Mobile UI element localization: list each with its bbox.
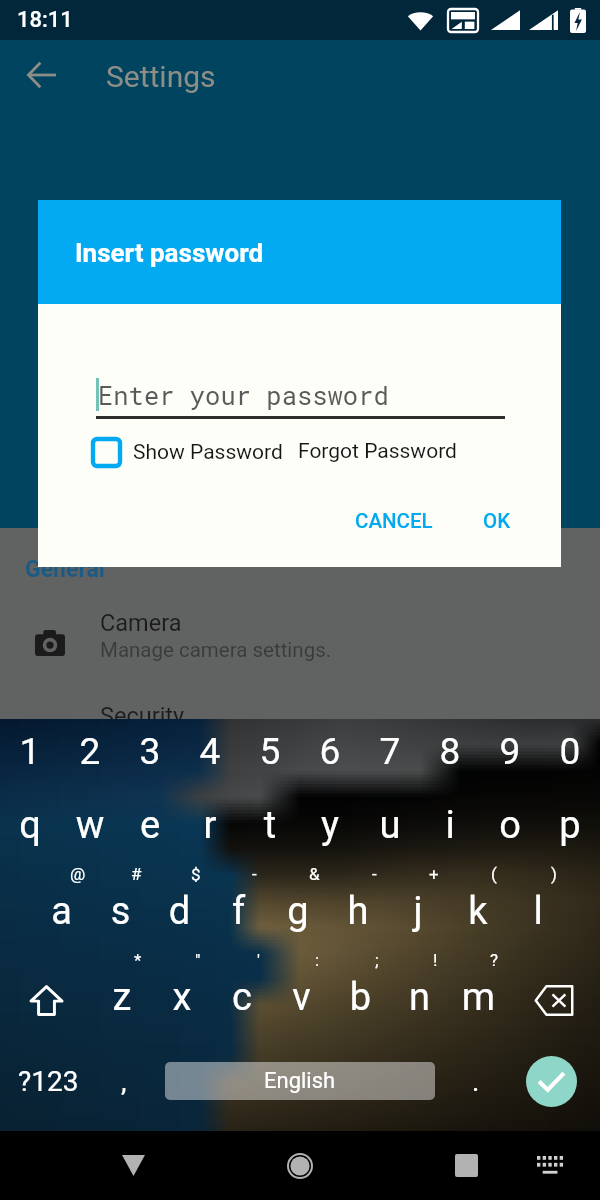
button[interactable]: 8 xyxy=(420,730,480,776)
button[interactable]: 7 xyxy=(360,730,420,776)
staticText: 0 xyxy=(540,730,600,773)
button[interactable]: Backspace xyxy=(508,965,600,1035)
button[interactable]: 2 xyxy=(60,730,120,776)
staticText: y xyxy=(300,803,360,848)
staticText: ) xyxy=(551,864,557,884)
button[interactable]: n xyxy=(390,975,449,1023)
button[interactable]: y xyxy=(300,803,360,851)
button[interactable]: h xyxy=(328,889,388,937)
button[interactable]: Back xyxy=(99,1131,167,1200)
button[interactable]: English xyxy=(165,1062,435,1100)
staticText: g xyxy=(268,889,328,934)
staticText: ' xyxy=(257,950,260,970)
staticText: : xyxy=(315,950,320,970)
button[interactable]: i xyxy=(420,803,480,851)
staticText: 2 xyxy=(60,730,120,773)
button[interactable]: Show Password xyxy=(88,432,283,473)
staticText: CANCEL xyxy=(355,509,433,533)
button[interactable]: d xyxy=(150,889,209,937)
button[interactable]: . xyxy=(448,1051,504,1111)
button[interactable]: ?123 xyxy=(0,1051,96,1111)
staticText: d xyxy=(150,889,209,934)
staticText: r xyxy=(180,803,240,848)
button[interactable]: f xyxy=(209,889,268,937)
staticText: Security xyxy=(100,702,185,730)
button[interactable]: v xyxy=(272,975,331,1023)
staticText: x xyxy=(152,975,212,1020)
button[interactable]: 6 xyxy=(300,730,360,776)
button[interactable]: Back xyxy=(13,47,69,103)
button[interactable]: , xyxy=(96,1051,152,1111)
button[interactable]: x xyxy=(152,975,212,1023)
staticText: - xyxy=(372,864,377,884)
staticText: ?123 xyxy=(18,1065,79,1098)
button[interactable]: u xyxy=(360,803,420,851)
staticText: Settings xyxy=(106,59,216,94)
staticText: v xyxy=(272,975,331,1020)
staticText: 8 xyxy=(420,730,480,773)
button[interactable]: Shift xyxy=(0,965,92,1035)
button[interactable]: k xyxy=(448,889,508,937)
staticText: 3 xyxy=(120,730,180,773)
staticText: + xyxy=(429,864,439,884)
staticText: i xyxy=(420,803,480,848)
staticText: 4 xyxy=(180,730,240,773)
button[interactable]: m xyxy=(449,975,508,1023)
button[interactable]: o xyxy=(480,803,540,851)
button[interactable]: Enter xyxy=(526,1056,577,1107)
button[interactable]: Forgot Password xyxy=(298,439,457,464)
staticText: f xyxy=(209,889,268,934)
button[interactable]: b xyxy=(331,975,390,1023)
staticText: l xyxy=(508,889,568,934)
button[interactable]: 9 xyxy=(480,730,540,776)
button[interactable]: c xyxy=(212,975,272,1023)
staticText: c xyxy=(212,975,272,1020)
staticText: @ xyxy=(70,864,86,884)
staticText: ; xyxy=(375,950,379,970)
staticText: Manage camera settings. xyxy=(100,638,332,662)
staticText: 9 xyxy=(480,730,540,773)
staticText: - xyxy=(252,864,257,884)
button[interactable]: Security xyxy=(0,689,600,782)
staticText: Enter your password xyxy=(98,378,389,412)
button[interactable]: l xyxy=(508,889,568,937)
staticText: q xyxy=(0,803,60,848)
button[interactable]: 5 xyxy=(240,730,300,776)
staticText: o xyxy=(480,803,540,848)
button[interactable]: g xyxy=(268,889,328,937)
staticText: ? xyxy=(490,950,499,970)
staticText: a xyxy=(32,889,91,934)
staticText: English xyxy=(264,1068,336,1094)
staticText: 5 xyxy=(240,730,300,773)
button[interactable]: a xyxy=(32,889,91,937)
button[interactable]: 3 xyxy=(120,730,180,776)
staticText: Insert password xyxy=(75,238,264,268)
staticText: $ xyxy=(191,864,201,884)
staticText: u xyxy=(360,803,420,848)
button[interactable]: Recents xyxy=(432,1131,500,1200)
button[interactable]: q xyxy=(0,803,60,851)
staticText: w xyxy=(60,803,120,848)
button[interactable]: 0 xyxy=(540,730,600,776)
button[interactable]: r xyxy=(180,803,240,851)
staticText: h xyxy=(328,889,388,934)
staticText: Show Password xyxy=(133,440,283,465)
button[interactable]: Home xyxy=(266,1131,334,1200)
staticText: # xyxy=(131,864,142,884)
button[interactable]: Camera xyxy=(0,596,600,689)
button[interactable]: 4 xyxy=(180,730,240,776)
button[interactable]: Switch keyboard xyxy=(516,1131,584,1200)
button[interactable]: j xyxy=(388,889,448,937)
button[interactable]: z xyxy=(92,975,152,1023)
button[interactable]: e xyxy=(120,803,180,851)
button[interactable]: t xyxy=(240,803,300,851)
button[interactable]: 1 xyxy=(0,730,60,776)
staticText: j xyxy=(388,889,448,934)
button[interactable]: p xyxy=(540,803,600,851)
button[interactable]: w xyxy=(60,803,120,851)
button[interactable]: OK xyxy=(469,495,525,547)
staticText: t xyxy=(240,803,300,848)
button[interactable]: CANCEL xyxy=(341,495,447,547)
button[interactable]: s xyxy=(91,889,150,937)
staticText: * xyxy=(134,950,142,970)
